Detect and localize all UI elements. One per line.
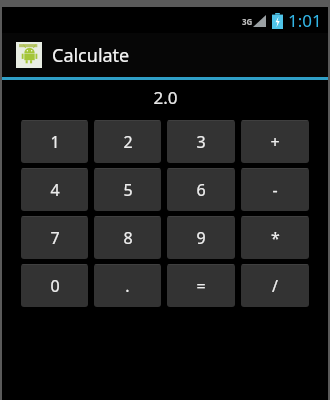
staticText: 2 [123,131,133,153]
button[interactable]: 5 [94,168,161,211]
staticText: 6 [196,179,206,201]
staticText: - [272,179,278,201]
staticText: + [270,131,280,153]
staticText: = [196,275,206,297]
staticText: Calculate [52,43,130,68]
button[interactable]: 0 [21,264,88,307]
button[interactable]: 1 [21,120,88,163]
staticText: 4 [50,179,60,201]
staticText: 3 [196,131,206,153]
staticText: 7 [50,227,60,249]
staticText: 2.0 [153,86,178,109]
staticText: 3G [242,16,253,27]
button[interactable]: / [241,264,309,307]
button[interactable]: + [241,120,309,163]
button[interactable]: = [167,264,235,307]
button[interactable]: 8 [94,216,161,259]
staticText: * [271,227,280,249]
button[interactable]: 7 [21,216,88,259]
staticText: 9 [196,227,206,249]
button[interactable]: * [241,216,309,259]
staticText: 8 [123,227,133,249]
button[interactable]: 4 [21,168,88,211]
button[interactable]: - [241,168,309,211]
button[interactable]: Calculate [2,33,328,77]
staticText: 0 [50,275,60,297]
button[interactable]: 9 [167,216,235,259]
button[interactable]: . [94,264,161,307]
button[interactable]: 3 [167,120,235,163]
button[interactable]: 2 [94,120,161,163]
staticText: 1:01 [288,9,322,32]
staticText: 1 [50,131,60,153]
button[interactable]: 6 [167,168,235,211]
staticText: / [272,275,278,297]
staticText: 5 [123,179,133,201]
staticText: . [125,275,130,297]
